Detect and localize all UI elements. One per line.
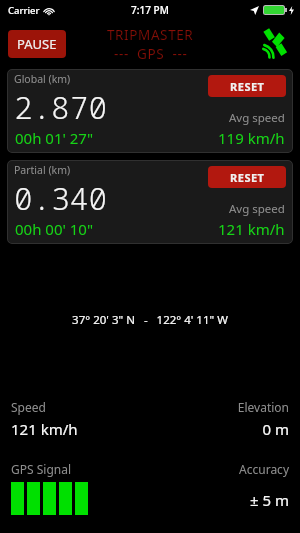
staticText: Carrier <box>8 4 40 17</box>
staticText: GPS Signal <box>11 461 72 477</box>
staticText: 2.870 <box>14 86 107 128</box>
button[interactable]: Global (km) <box>7 69 293 153</box>
staticText: 121 km/h <box>11 419 78 439</box>
staticText: Avg speed <box>229 110 285 126</box>
staticText: RESET <box>230 170 265 185</box>
staticText: Accuracy <box>239 461 289 477</box>
button[interactable]: GPS satellite status <box>251 23 293 65</box>
staticText: 37° 20' 3" N - 122° 4' 11" W <box>0 312 300 328</box>
staticText: 7:17 PM <box>131 3 169 17</box>
staticText: Elevation <box>237 399 289 415</box>
staticText: --- GPS --- <box>114 45 188 63</box>
staticText: 0 m <box>262 419 289 439</box>
staticText: Global (km) <box>14 72 71 86</box>
staticText: 00h 00' 10" <box>15 219 94 239</box>
staticText: Avg speed <box>229 201 285 217</box>
staticText: Partial (km) <box>14 163 71 177</box>
button[interactable]: RESET <box>208 75 286 97</box>
staticText: ± 5 m <box>250 490 289 510</box>
button[interactable]: PAUSE <box>8 30 66 58</box>
staticText: Speed <box>11 399 46 415</box>
staticText: 0.340 <box>14 177 107 219</box>
staticText: 00h 01' 27" <box>15 128 94 148</box>
staticText: RESET <box>230 79 265 94</box>
button[interactable]: RESET <box>208 166 286 188</box>
staticText: PAUSE <box>17 35 57 53</box>
staticText: TRIPMASTER <box>107 26 194 44</box>
button[interactable]: Partial (km) <box>7 160 293 244</box>
staticText: 119 km/h <box>218 128 285 148</box>
staticText: 121 km/h <box>218 219 285 239</box>
